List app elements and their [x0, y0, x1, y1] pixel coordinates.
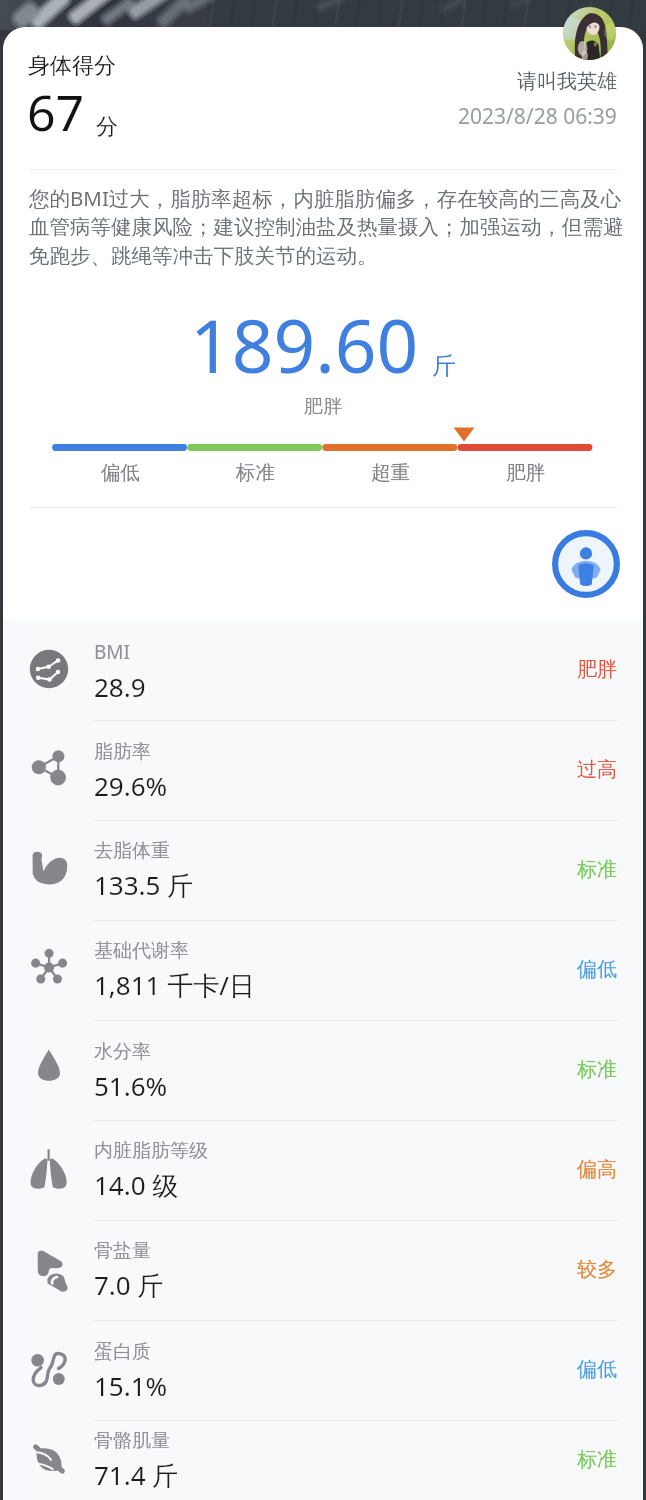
staticText: 骨盐量	[94, 1239, 151, 1263]
staticText: 标准	[577, 1447, 617, 1472]
staticText: 133.5 斤	[94, 867, 194, 903]
staticText: 较多	[577, 1257, 617, 1282]
staticText: 标准	[577, 1057, 617, 1082]
staticText: 超重	[371, 460, 410, 485]
staticText: 内脏脂肪等级	[94, 1139, 208, 1163]
staticText: 28.9	[94, 669, 146, 704]
button[interactable]: 骨骼肌量	[3, 1420, 643, 1500]
staticText: 请叫我英雄	[517, 69, 617, 94]
staticText: 肥胖	[304, 395, 342, 419]
staticText: 蛋白质	[94, 1340, 151, 1364]
staticText: 脂肪率	[94, 740, 151, 764]
staticText: 过高	[577, 757, 617, 782]
staticText: 免跑步、跳绳等冲击下肢关节的运动。	[29, 243, 378, 269]
button[interactable]: 蛋白质	[3, 1320, 643, 1420]
button[interactable]: BMI	[3, 620, 643, 720]
button[interactable]: 脂肪率	[3, 720, 643, 820]
staticText: 水分率	[94, 1040, 151, 1064]
staticText: 标准	[577, 857, 617, 882]
staticText: 71.4 斤	[94, 1457, 179, 1493]
staticText: 2023/8/28 06:39	[458, 102, 617, 131]
staticText: 身体得分	[28, 52, 116, 80]
button[interactable]: Body model	[552, 530, 620, 598]
staticText: 1,811 千卡/日	[94, 967, 255, 1003]
button[interactable]: 去脂体重	[3, 820, 643, 920]
staticText: 血管病等健康风险；建议控制油盐及热量摄入；加强运动，但需避	[29, 214, 624, 240]
button[interactable]: 水分率	[3, 1020, 643, 1120]
staticText: 偏高	[577, 1157, 617, 1182]
staticText: 51.6%	[94, 1068, 168, 1103]
staticText: 去脂体重	[94, 839, 170, 863]
staticText: 分	[96, 113, 118, 141]
staticText: 偏低	[101, 460, 140, 485]
staticText: 肥胖	[506, 460, 545, 485]
staticText: 189.60	[190, 295, 419, 394]
staticText: 偏低	[577, 957, 617, 982]
staticText: 29.6%	[94, 768, 168, 803]
button[interactable]: Profile avatar	[563, 7, 616, 60]
staticText: 基础代谢率	[94, 939, 189, 963]
staticText: BMI	[94, 639, 131, 665]
staticText: 14.0 级	[94, 1167, 179, 1203]
staticText: 67	[27, 78, 85, 146]
staticText: 肥胖	[577, 657, 617, 682]
button[interactable]: 骨盐量	[3, 1220, 643, 1320]
staticText: 15.1%	[94, 1368, 168, 1403]
staticText: 偏低	[577, 1357, 617, 1382]
staticText: 斤	[432, 351, 456, 381]
staticText: 您的BMI过大，脂肪率超标，内脏脂肪偏多，存在较高的三高及心	[29, 184, 622, 212]
staticText: 标准	[236, 460, 275, 485]
staticText: 骨骼肌量	[94, 1429, 170, 1453]
button[interactable]: 内脏脂肪等级	[3, 1120, 643, 1220]
staticText: 7.0 斤	[94, 1267, 164, 1303]
button[interactable]: 基础代谢率	[3, 920, 643, 1020]
